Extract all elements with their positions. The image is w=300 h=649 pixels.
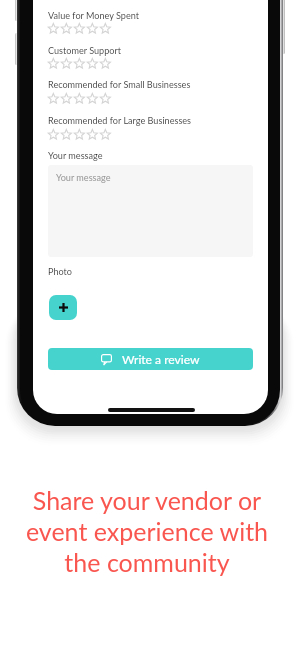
- staticText: Your message: [56, 172, 111, 183]
- staticText: Write a review: [122, 352, 200, 367]
- staticText: Value for Money Spent: [48, 10, 140, 21]
- staticText: Photo: [48, 266, 72, 277]
- staticText: Recommended for Small Businesses: [48, 79, 191, 90]
- staticText: Recommended for Large Businesses: [48, 115, 192, 126]
- staticText: Your message: [48, 150, 103, 161]
- staticText: Customer Support: [48, 45, 121, 56]
- button[interactable]: Add photo: [49, 295, 77, 320]
- staticText: Share your vendor or event experience wi…: [0, 485, 297, 577]
- button[interactable]: Write a review: [48, 348, 253, 370]
